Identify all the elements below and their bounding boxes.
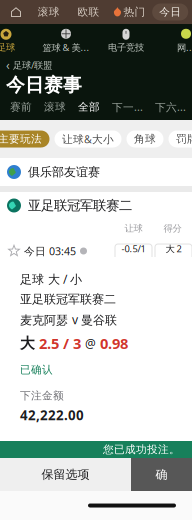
- staticText: 让球: [124, 223, 142, 234]
- staticText: 让球&大小: [62, 132, 114, 146]
- staticText: 足球 大 / 小: [20, 271, 82, 287]
- staticText: 网...: [177, 41, 192, 54]
- staticText: 全部: [78, 100, 100, 113]
- button[interactable]: 大 2: [155, 244, 192, 270]
- button[interactable]: 下一个小时: [106, 94, 149, 120]
- button[interactable]: 赛前: [4, 94, 38, 120]
- staticText: 热门: [123, 5, 145, 18]
- button[interactable]: 全部: [72, 94, 106, 120]
- staticText: 您已成功投注。: [103, 443, 180, 456]
- staticText: 足球/联盟: [13, 59, 52, 71]
- staticText: 麦克阿瑟 v 曼谷联: [20, 312, 117, 328]
- staticText: 得分: [163, 223, 181, 234]
- staticText: 篮球 & 美...: [42, 41, 89, 54]
- button[interactable]: 电子竞技: [96, 24, 156, 58]
- staticText: 赛前: [10, 100, 32, 113]
- staticText: 亚足联冠军联赛二: [28, 197, 132, 214]
- staticText: 欧联: [78, 5, 100, 18]
- button[interactable]: 角球: [126, 130, 163, 147]
- staticText: 亚足联冠军联赛二: [20, 292, 116, 307]
- button[interactable]: 今日: [152, 3, 188, 20]
- button[interactable]: 下六个小时: [149, 94, 192, 120]
- staticText: 曼谷联: [8, 292, 44, 306]
- button[interactable]: 欧联: [71, 3, 107, 20]
- staticText: 俱乐部友谊赛: [28, 165, 100, 179]
- button[interactable]: 确: [131, 458, 192, 491]
- staticText: 今日赛事: [6, 73, 82, 96]
- staticText: 今日: [159, 5, 181, 18]
- staticText: 保留选项: [41, 467, 89, 482]
- staticText: 滚球: [44, 100, 66, 113]
- staticText: 2.5 / 3: [39, 334, 81, 353]
- staticText: 麦克阿瑟: [8, 267, 56, 282]
- staticText: ‹: [6, 57, 10, 73]
- staticText: 下一个小时: [112, 100, 143, 114]
- staticText: 确: [155, 467, 167, 482]
- staticText: 今日 03:45: [24, 244, 76, 258]
- staticText: 已确认: [20, 363, 53, 376]
- button[interactable]: 保留选项: [0, 458, 131, 491]
- button[interactable]: 网...: [156, 24, 192, 58]
- staticText: @: [85, 335, 96, 351]
- button[interactable]: 篮球 & 美...: [36, 24, 96, 58]
- staticText: 下六个小时: [155, 100, 186, 114]
- staticText: 0.98: [100, 334, 128, 353]
- button[interactable]: -0.5/1: [115, 244, 152, 270]
- staticText: 下注金额: [20, 389, 64, 402]
- staticText: 大 2: [165, 242, 181, 255]
- staticText: 足球: [0, 42, 15, 53]
- staticText: 42,222.00: [20, 406, 84, 424]
- button[interactable]: 足球: [0, 24, 36, 58]
- staticText: 罚牌: [176, 132, 192, 145]
- button[interactable]: ‹: [6, 58, 52, 71]
- staticText: 角球: [134, 132, 156, 145]
- staticText: -0.5/1: [121, 242, 145, 255]
- staticText: 滚球: [38, 5, 60, 18]
- staticText: 电子竞技: [108, 42, 144, 53]
- button[interactable]: 首页: [5, 1, 27, 23]
- staticText: 大: [20, 334, 35, 352]
- button[interactable]: 让球&大小: [54, 130, 121, 147]
- button[interactable]: 滚球: [31, 3, 67, 20]
- button[interactable]: 主要玩法: [0, 130, 49, 147]
- button[interactable]: 滚球: [38, 94, 72, 120]
- button[interactable]: 热门: [110, 1, 148, 23]
- button[interactable]: 罚牌: [168, 130, 192, 147]
- staticText: 主要玩法: [0, 132, 42, 145]
- button[interactable]: 俱乐部友谊赛: [0, 158, 192, 186]
- button[interactable]: 亚足联冠军联赛二: [0, 192, 192, 219]
